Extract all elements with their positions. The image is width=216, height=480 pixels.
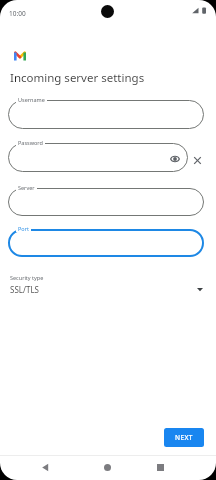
staticText: Username [18, 96, 45, 103]
button[interactable] [104, 464, 111, 471]
staticText: SSL/TLS [10, 284, 39, 295]
staticText: Security type [10, 274, 44, 281]
button[interactable] [8, 188, 204, 216]
staticText: 10:00 [9, 9, 26, 18]
staticText: Server [18, 184, 35, 191]
staticText: Password [18, 139, 43, 146]
button[interactable] [8, 229, 204, 257]
staticText: NEXT [175, 433, 193, 442]
staticText: Port [18, 225, 29, 232]
button[interactable] [8, 143, 188, 172]
button[interactable]: SSL/TLS [8, 284, 204, 298]
staticText: Incoming server settings [10, 70, 145, 86]
button[interactable] [8, 100, 204, 129]
button[interactable]: NEXT [164, 428, 204, 447]
button[interactable] [41, 463, 50, 472]
button[interactable] [193, 156, 202, 165]
